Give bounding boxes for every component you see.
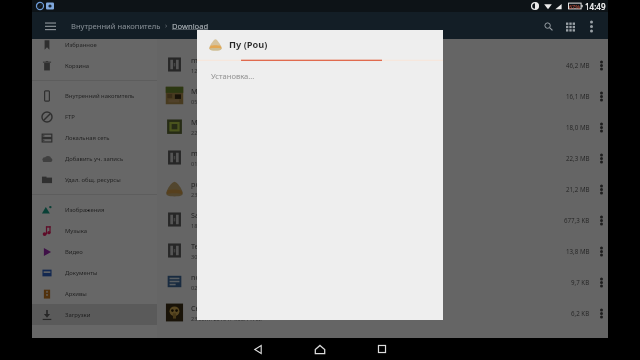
- staticText: Загрузки: [65, 311, 91, 319]
- button[interactable]: Загрузки: [32, 304, 157, 325]
- staticText: 05 нояб. 2015 г. 10:01:12: [191, 98, 257, 106]
- staticText: notes-text.txt: [191, 272, 237, 282]
- button[interactable]: Удал. общ. ресурсы: [32, 169, 157, 190]
- staticText: Minecraft.apk: [191, 86, 238, 96]
- staticText: Корзина: [65, 62, 90, 70]
- staticText: Локальная сеть: [65, 134, 110, 142]
- button[interactable]: Sample-file.pdf: [157, 204, 608, 235]
- button[interactable]: Recent apps: [371, 338, 393, 360]
- staticText: 18,0 MB: [566, 123, 590, 131]
- button[interactable]: Избранное: [32, 34, 157, 55]
- staticText: 67%: [569, 3, 581, 10]
- button[interactable]: Back: [247, 338, 269, 360]
- button[interactable]: Minecraft.apk: [157, 80, 608, 111]
- staticText: my-racing.apk: [191, 148, 239, 158]
- staticText: Скачанное изображение: [191, 303, 278, 313]
- staticText: 23 сент. 2015 г. 4:56:44 AM: [191, 191, 262, 199]
- staticText: Sample-file.pdf: [191, 210, 242, 220]
- button[interactable]: Корзина: [32, 55, 157, 76]
- staticText: 30 окт. 2015 г. 11:21:07: [191, 253, 253, 261]
- staticText: Установка...: [211, 71, 255, 81]
- staticText: 16,1 MB: [566, 92, 590, 100]
- button[interactable]: File options: [595, 148, 608, 168]
- button[interactable]: Видео: [32, 241, 157, 262]
- staticText: 18 окт. 2015 г. 21:30:00: [191, 222, 253, 230]
- button[interactable]: File options: [595, 55, 608, 75]
- button[interactable]: Home: [309, 338, 331, 360]
- staticText: Архивы: [65, 290, 87, 298]
- staticText: MX Player.apk: [191, 117, 238, 127]
- staticText: 46,2 MB: [566, 61, 590, 69]
- button[interactable]: File options: [595, 303, 608, 323]
- staticText: 22,3 MB: [566, 154, 590, 162]
- staticText: ›: [165, 21, 168, 31]
- button[interactable]: File options: [595, 86, 608, 106]
- button[interactable]: File options: [595, 241, 608, 261]
- button[interactable]: MX Player.apk: [157, 111, 608, 142]
- staticText: Удал. общ. ресурсы: [65, 176, 121, 184]
- button[interactable]: Download: [172, 21, 209, 31]
- button[interactable]: FTP: [32, 106, 157, 127]
- staticText: Документы: [65, 269, 98, 277]
- staticText: Внутренний накопитель: [65, 92, 135, 100]
- button[interactable]: Скачанное изображение: [157, 297, 608, 328]
- button[interactable]: Open navigation drawer: [42, 17, 59, 34]
- button[interactable]: Telegram.apk: [157, 235, 608, 266]
- staticText: 9,7 KB: [571, 278, 590, 286]
- staticText: 01 нояб. 2015 г. 09:12:44: [191, 160, 257, 168]
- staticText: FTP: [65, 113, 75, 121]
- staticText: Музыка: [65, 227, 87, 235]
- staticText: 21,2 MB: [566, 185, 590, 193]
- button[interactable]: File options: [595, 179, 608, 199]
- button[interactable]: Архивы: [32, 283, 157, 304]
- staticText: 02 нояб. 2015 г. 08:03:11: [191, 284, 257, 292]
- button[interactable]: pou.apk: [157, 173, 608, 204]
- button[interactable]: mega-game.apk: [157, 49, 608, 80]
- staticText: 12 окт. 2015 г. 14:22:08: [191, 67, 253, 75]
- staticText: pou.apk: [191, 179, 219, 189]
- button[interactable]: More options: [581, 16, 601, 36]
- button[interactable]: Внутренний накопитель: [71, 21, 161, 31]
- button[interactable]: Grid view: [560, 16, 580, 36]
- button[interactable]: File options: [595, 210, 608, 230]
- staticText: 22 окт. 2015 г. 18:55:31: [191, 129, 253, 137]
- staticText: Пу (Pou): [229, 38, 268, 51]
- staticText: Telegram.apk: [191, 241, 237, 251]
- staticText: 23 сент. 2015 г. 4:56:44 AM: [191, 315, 262, 323]
- button[interactable]: Внутренний накопитель: [32, 85, 157, 106]
- staticText: 677,3 KB: [564, 216, 590, 224]
- staticText: 6,2 KB: [571, 309, 590, 317]
- staticText: mega-game.apk: [191, 55, 246, 65]
- button[interactable]: my-racing.apk: [157, 142, 608, 173]
- staticText: Видео: [65, 248, 83, 256]
- button[interactable]: Документы: [32, 262, 157, 283]
- staticText: Добавить уч. запись: [65, 155, 124, 163]
- button[interactable]: File options: [595, 117, 608, 137]
- staticText: 13,8 MB: [566, 247, 590, 255]
- button[interactable]: Музыка: [32, 220, 157, 241]
- staticText: Избранное: [65, 41, 97, 49]
- staticText: Изображения: [65, 206, 105, 214]
- staticText: 14:49: [585, 1, 606, 12]
- button[interactable]: Локальная сеть: [32, 127, 157, 148]
- button[interactable]: Добавить уч. запись: [32, 148, 157, 169]
- button[interactable]: notes-text.txt: [157, 266, 608, 297]
- button[interactable]: Изображения: [32, 199, 157, 220]
- button[interactable]: File options: [595, 272, 608, 292]
- button[interactable]: Search: [538, 16, 558, 36]
